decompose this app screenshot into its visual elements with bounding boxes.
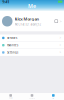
staticText: Chats (9, 97, 13, 99)
button[interactable]: Alex Morgan (0, 11, 64, 31)
button[interactable]: Contacts (21, 93, 43, 100)
button[interactable]: Settings (0, 49, 64, 56)
staticText: > (59, 43, 61, 47)
staticText: > (59, 51, 61, 54)
staticText: > (59, 19, 61, 24)
button[interactable]: Me (43, 93, 64, 100)
staticText: Alex Morgan (14, 16, 39, 21)
staticText: Me (28, 2, 36, 9)
staticText: > (59, 36, 61, 40)
staticText: Favorites (7, 43, 18, 47)
button[interactable]: Favorites (0, 42, 64, 49)
staticText: WeChat ID: alexm_92 (14, 23, 41, 26)
staticText: Services (7, 36, 17, 40)
button[interactable]: Chats (0, 93, 21, 100)
staticText: Settings (7, 51, 18, 54)
staticText: Contacts (29, 97, 35, 99)
button[interactable]: Services (0, 34, 64, 41)
staticText: Me (52, 97, 54, 99)
staticText: 9:41 (2, 0, 9, 4)
